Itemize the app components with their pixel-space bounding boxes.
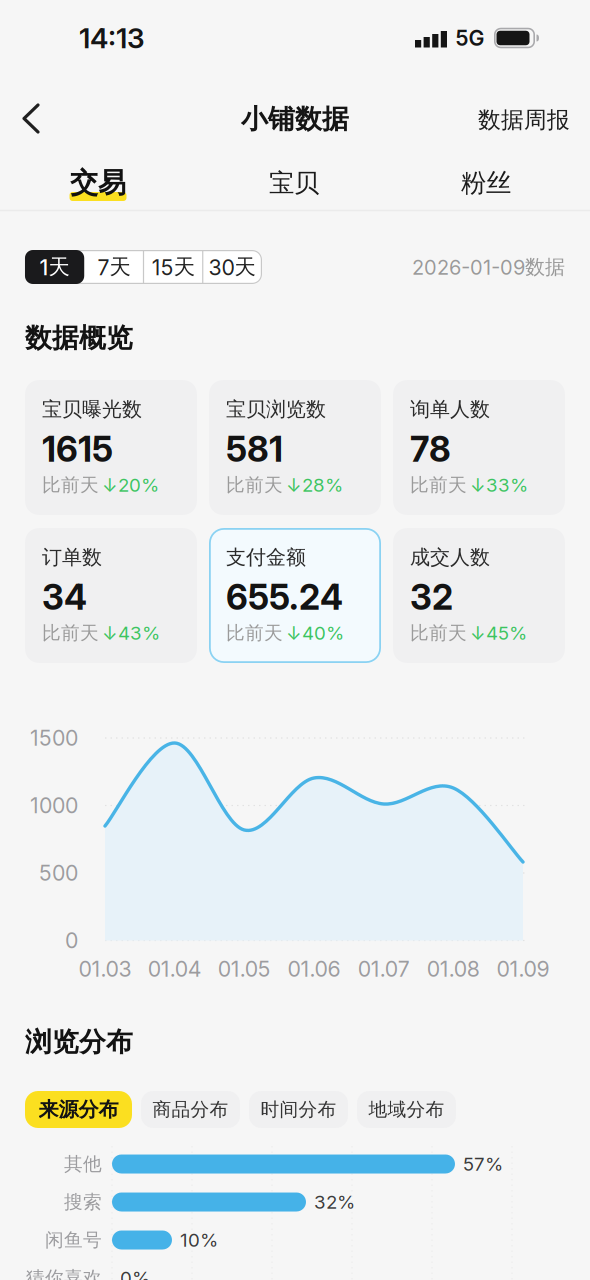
button[interactable]: 成交人数 <box>393 528 565 663</box>
staticText: 比前天 <box>226 473 283 496</box>
staticText: 01.04 <box>148 956 202 982</box>
button[interactable]: 宝贝 <box>234 155 354 211</box>
staticText: 01.08 <box>427 956 480 982</box>
staticText: 32% <box>314 1191 355 1213</box>
staticText: ↓43% <box>102 622 160 644</box>
staticText: 时间分布 <box>260 1098 336 1121</box>
staticText: ↓45% <box>470 622 527 644</box>
staticText: 其他 <box>64 1152 102 1175</box>
staticText: 01.05 <box>218 956 271 982</box>
staticText: 宝贝曝光数 <box>42 397 142 422</box>
staticText: 14:13 <box>79 21 145 54</box>
staticText: 78 <box>410 429 451 469</box>
staticText: 比前天 <box>410 621 467 644</box>
staticText: 1天 <box>40 254 70 280</box>
button[interactable]: 粉丝 <box>426 155 546 211</box>
button[interactable]: 7天 <box>85 250 143 284</box>
staticText: ↓33% <box>470 474 528 496</box>
staticText: 宝贝浏览数 <box>226 397 326 422</box>
staticText: 10% <box>180 1229 218 1251</box>
staticText: 比前天 <box>410 473 467 496</box>
staticText: 来源分布 <box>38 1097 118 1122</box>
staticText: 2026-01-09数据 <box>412 255 565 279</box>
button[interactable]: 数据周报 <box>478 106 570 134</box>
button[interactable]: 宝贝曝光数 <box>25 380 197 515</box>
button[interactable]: 地域分布 <box>357 1091 456 1128</box>
button[interactable]: 交易 <box>38 155 158 211</box>
staticText: 1000 <box>30 793 78 818</box>
staticText: 01.09 <box>496 956 549 982</box>
staticText: 7天 <box>97 254 130 280</box>
button[interactable]: 询单人数 <box>393 380 565 515</box>
button[interactable]: 支付金额 <box>209 528 381 663</box>
staticText: 32 <box>410 577 453 617</box>
button[interactable]: 15天 <box>144 250 202 284</box>
staticText: 581 <box>226 429 283 469</box>
staticText: 商品分布 <box>152 1098 228 1121</box>
staticText: 500 <box>39 860 78 886</box>
staticText: 搜索 <box>64 1190 102 1213</box>
button[interactable]: 时间分布 <box>249 1091 348 1128</box>
button[interactable]: 来源分布 <box>25 1091 132 1128</box>
staticText: 57% <box>463 1153 503 1175</box>
staticText: 数据概览 <box>25 322 133 354</box>
staticText: 01.03 <box>78 956 131 982</box>
staticText: 0 <box>65 928 78 953</box>
staticText: 34 <box>42 577 87 617</box>
button[interactable]: 1天 <box>25 250 84 284</box>
staticText: 1615 <box>42 429 113 469</box>
staticText: 宝贝 <box>269 167 319 198</box>
staticText: ↓40% <box>286 622 344 644</box>
staticText: 15天 <box>152 254 195 280</box>
staticText: 地域分布 <box>368 1098 444 1121</box>
staticText: 浏览分布 <box>25 1026 133 1058</box>
staticText: 粉丝 <box>461 167 511 198</box>
button[interactable]: 宝贝浏览数 <box>209 380 381 515</box>
staticText: 订单数 <box>42 545 102 570</box>
staticText: 比前天 <box>42 621 99 644</box>
staticText: 交易 <box>70 166 126 200</box>
staticText: ↓28% <box>286 474 343 496</box>
staticText: 1500 <box>30 725 78 751</box>
staticText: 比前天 <box>226 621 283 644</box>
button[interactable]: 30天 <box>203 250 261 284</box>
staticText: 小铺数据 <box>241 103 349 135</box>
staticText: 闲鱼号 <box>45 1228 102 1251</box>
staticText: 5G <box>455 25 484 51</box>
staticText: 支付金额 <box>226 545 306 570</box>
staticText: 655.24 <box>226 577 343 617</box>
button[interactable]: 订单数 <box>25 528 197 663</box>
staticText: 01.07 <box>358 956 410 982</box>
staticText: 01.06 <box>287 956 340 982</box>
staticText: 询单人数 <box>410 397 490 422</box>
staticText: 数据周报 <box>478 106 570 134</box>
staticText: 30天 <box>208 254 255 280</box>
staticText: 0% <box>120 1267 150 1280</box>
staticText: ↓20% <box>102 474 159 496</box>
button[interactable]: Back <box>11 99 55 139</box>
staticText: 猜你喜欢 <box>26 1266 102 1280</box>
staticText: 成交人数 <box>410 545 490 570</box>
staticText: 比前天 <box>42 473 99 496</box>
button[interactable]: 商品分布 <box>141 1091 240 1128</box>
